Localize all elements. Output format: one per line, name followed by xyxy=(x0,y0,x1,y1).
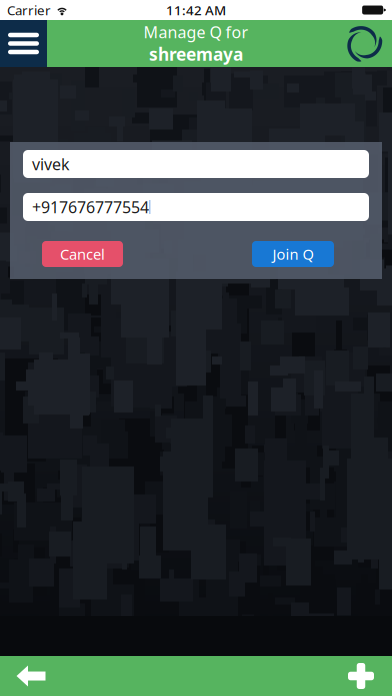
button[interactable]: Back xyxy=(0,656,62,696)
button[interactable]: Menu xyxy=(0,20,47,67)
button[interactable]: Join Q xyxy=(252,241,334,267)
staticText: Cancel xyxy=(60,244,105,264)
staticText: Manage Q for xyxy=(143,21,248,43)
button[interactable]: Cancel xyxy=(42,241,123,267)
staticText: vivek xyxy=(32,153,70,175)
staticText: shreemaya xyxy=(149,43,243,66)
staticText: Carrier xyxy=(7,1,51,19)
button[interactable]: Queue logo xyxy=(345,20,392,67)
staticText: +917676777554 xyxy=(32,196,149,218)
staticText: Join Q xyxy=(272,244,313,264)
button[interactable]: Add xyxy=(330,656,392,696)
staticText: 11:42 AM xyxy=(166,1,226,19)
